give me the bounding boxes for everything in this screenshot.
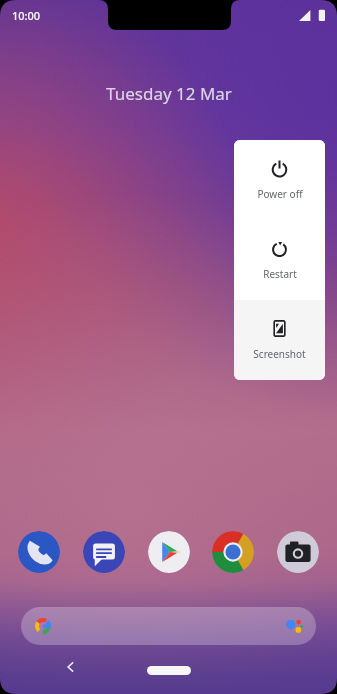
button[interactable]: Chrome bbox=[212, 531, 254, 573]
button[interactable]: Restart bbox=[234, 220, 325, 300]
other: Screenshot bbox=[270, 319, 289, 338]
button[interactable]: Back bbox=[58, 654, 84, 680]
other: Google Search bbox=[34, 617, 52, 635]
button[interactable]: Home bbox=[147, 666, 191, 675]
other: Google Assistant bbox=[285, 617, 303, 635]
button[interactable]: Play Store bbox=[148, 531, 190, 573]
staticText: Screenshot bbox=[253, 347, 306, 361]
staticText: Power off bbox=[257, 187, 303, 201]
button[interactable]: Messages bbox=[83, 531, 125, 573]
button[interactable]: Phone bbox=[18, 531, 60, 573]
button[interactable]: Google Search bbox=[21, 607, 316, 645]
staticText: Restart bbox=[263, 267, 297, 281]
button[interactable]: Camera bbox=[277, 531, 319, 573]
other: Power off bbox=[270, 159, 289, 178]
other: Restart bbox=[270, 239, 289, 258]
button[interactable]: Power off bbox=[234, 140, 325, 220]
staticText: Tuesday 12 Mar bbox=[106, 82, 232, 105]
staticText: 10:00 bbox=[12, 8, 41, 23]
button[interactable]: Screenshot bbox=[234, 300, 325, 380]
